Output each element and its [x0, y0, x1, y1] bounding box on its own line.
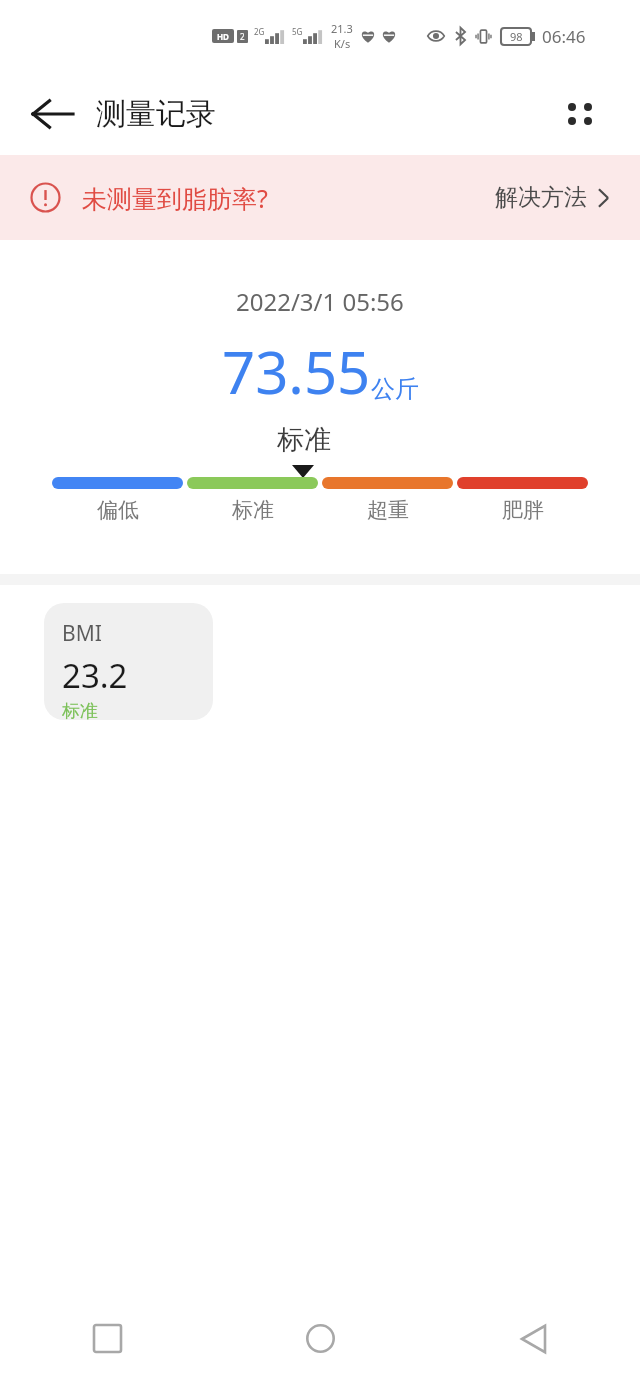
staticText: 标准 [277, 423, 331, 457]
staticText: 73.55 [222, 332, 371, 411]
staticText: 2 [240, 31, 245, 42]
staticText: HD [217, 31, 229, 42]
staticText: BMI [62, 619, 102, 648]
staticText: 98 [510, 29, 523, 44]
staticText: 5G [292, 26, 303, 37]
button[interactable]: Recents [0, 1300, 214, 1377]
staticText: 测量记录 [96, 95, 216, 133]
button[interactable]: 未测量到脂肪率? [0, 155, 640, 240]
button[interactable]: BMI [44, 603, 213, 720]
staticText: 公斤 [371, 374, 419, 404]
staticText: K/s [334, 36, 351, 51]
staticText: 2G [254, 26, 265, 37]
button[interactable]: Home [214, 1300, 427, 1377]
staticText: 标准 [62, 700, 98, 720]
staticText: 21.3 [331, 21, 353, 36]
button[interactable]: Back [22, 84, 82, 144]
staticText: 偏低 [97, 497, 139, 523]
staticText: 超重 [367, 497, 409, 523]
staticText: 解决方法 [495, 183, 587, 212]
button[interactable]: Back [427, 1300, 640, 1377]
staticText: 23.2 [62, 653, 128, 698]
staticText: 肥胖 [502, 497, 544, 523]
staticText: 未测量到脂肪率? [82, 181, 268, 215]
staticText: 06:46 [542, 25, 586, 48]
staticText: 标准 [232, 497, 274, 523]
button[interactable]: More options [551, 85, 609, 143]
staticText: 2022/3/1 05:56 [236, 285, 404, 318]
